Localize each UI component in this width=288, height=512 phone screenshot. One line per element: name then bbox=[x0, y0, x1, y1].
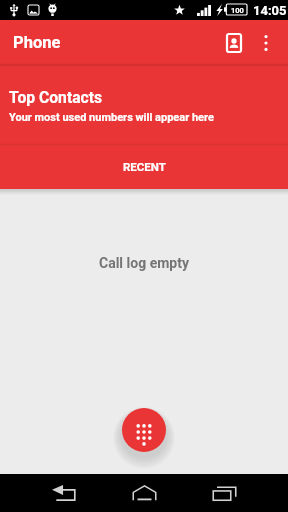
button[interactable]: RECENT bbox=[0, 144, 288, 189]
button[interactable]: Recents bbox=[184, 474, 264, 512]
button[interactable]: Dialpad bbox=[122, 408, 166, 452]
staticText: Top Contacts bbox=[9, 88, 103, 106]
staticText: Phone bbox=[13, 33, 61, 52]
staticText: Call log empty bbox=[99, 255, 189, 271]
staticText: RECENT bbox=[123, 160, 166, 173]
staticText: Your most used numbers will appear here bbox=[9, 111, 214, 124]
button[interactable]: Home bbox=[104, 474, 184, 512]
staticText: 100 bbox=[231, 6, 244, 15]
button[interactable]: More options bbox=[249, 20, 283, 65]
button[interactable]: Back bbox=[24, 474, 104, 512]
staticText: 14:05 bbox=[253, 3, 287, 18]
button[interactable]: Contacts bbox=[213, 20, 255, 65]
